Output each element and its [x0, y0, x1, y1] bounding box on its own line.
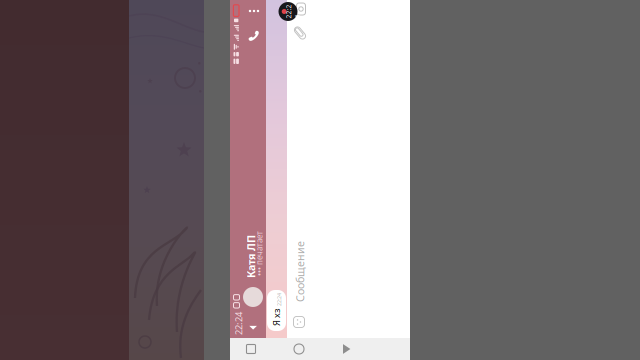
staticText: ••• печатает: [213, 103, 258, 114]
staticText: Катя ЛП: [211, 93, 254, 107]
staticText: 22:24: [286, 3, 300, 20]
button[interactable]: Send: [375, 338, 415, 360]
staticText: Сообщение: [187, 142, 248, 156]
button[interactable]: Recents: [231, 338, 271, 360]
button[interactable]: Screen recorder: [278, 2, 297, 21]
button[interactable]: Play: [327, 338, 367, 360]
button[interactable]: Home: [279, 338, 319, 360]
